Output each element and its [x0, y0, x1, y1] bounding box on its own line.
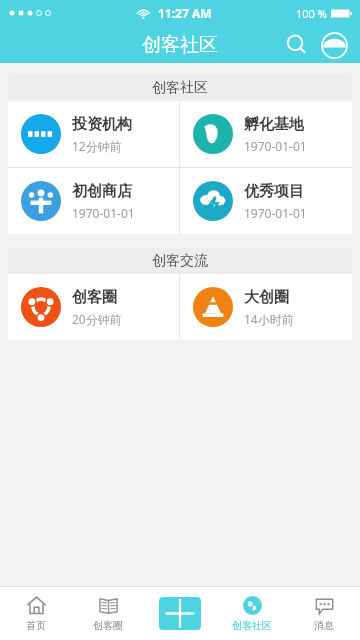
staticText: 孵化基地: [244, 115, 304, 134]
staticText: 1970-01-01: [244, 138, 307, 154]
staticText: 大创圈: [244, 288, 289, 307]
button[interactable]: Add: [144, 587, 216, 640]
staticText: 创客交流: [152, 252, 208, 270]
staticText: 创客圈: [72, 288, 117, 307]
staticText: 11:27 AM: [158, 5, 212, 21]
staticText: 创客社区: [232, 619, 272, 632]
button[interactable]: 投资机构: [8, 101, 179, 167]
staticText: 创客圈: [93, 619, 123, 632]
staticText: 首页: [26, 619, 46, 632]
button[interactable]: Search: [280, 28, 314, 62]
staticText: 100 %: [296, 6, 327, 21]
staticText: 优秀项目: [244, 182, 304, 201]
button[interactable]: Profile: [317, 28, 351, 62]
button[interactable]: 创客圈: [8, 274, 179, 340]
button[interactable]: 首页: [0, 587, 72, 640]
staticText: 初创商店: [72, 182, 132, 201]
button[interactable]: 初创商店: [8, 168, 179, 234]
button[interactable]: 大创圈: [180, 274, 352, 340]
staticText: 12分钟前: [72, 138, 122, 154]
staticText: 消息: [314, 619, 334, 632]
staticText: 1970-01-01: [244, 205, 307, 221]
staticText: 20分钟前: [72, 311, 122, 327]
staticText: 14小时前: [244, 311, 294, 327]
staticText: 1970-01-01: [72, 205, 135, 221]
button[interactable]: 优秀项目: [180, 168, 352, 234]
button[interactable]: 创客圈: [72, 587, 144, 640]
staticText: 创客社区: [142, 33, 218, 57]
button[interactable]: 创客社区: [216, 587, 288, 640]
button[interactable]: 消息: [288, 587, 360, 640]
staticText: 创客社区: [152, 79, 208, 97]
staticText: 投资机构: [72, 115, 132, 134]
button[interactable]: 孵化基地: [180, 101, 352, 167]
